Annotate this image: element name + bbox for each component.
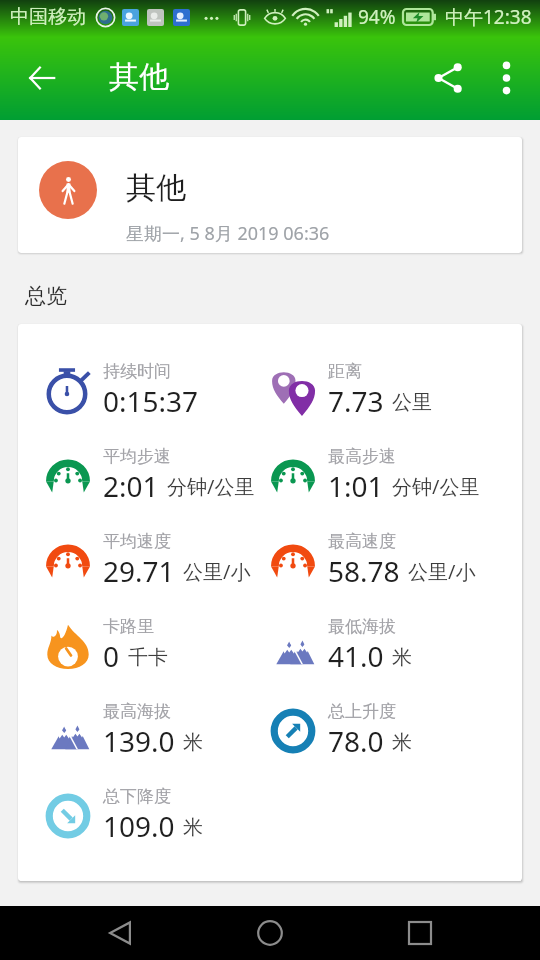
- button[interactable]: Back: [18, 54, 66, 102]
- button[interactable]: 最低海拔: [244, 603, 522, 688]
- staticText: 分钟/公里: [167, 473, 255, 500]
- staticText: 0: [103, 637, 120, 675]
- button[interactable]: Share: [425, 54, 473, 102]
- button[interactable]: 平均速度: [18, 518, 244, 603]
- button[interactable]: 距离: [244, 348, 522, 433]
- button[interactable]: 平均步速: [18, 433, 244, 518]
- staticText: 卡路里: [103, 616, 154, 637]
- button[interactable]: Home: [240, 906, 300, 960]
- staticText: 0:15:37: [103, 382, 199, 420]
- button[interactable]: 持续时间: [18, 348, 244, 433]
- staticText: 平均步速: [103, 446, 171, 467]
- button[interactable]: 其他: [18, 137, 522, 253]
- staticText: 中午12:38: [445, 4, 532, 30]
- staticText: 公里/小: [408, 558, 476, 585]
- staticText: 中国移动: [10, 5, 86, 29]
- staticText: 总下降度: [103, 786, 171, 807]
- staticText: 7.73: [328, 382, 384, 420]
- staticText: 距离: [328, 361, 362, 382]
- staticText: 2:01: [103, 467, 159, 505]
- staticText: 58.78: [328, 552, 400, 590]
- staticText: 其他: [109, 58, 169, 96]
- staticText: 星期一, 5 8月 2019 06:36: [126, 221, 330, 246]
- staticText: 最高海拔: [103, 701, 171, 722]
- staticText: 94%: [358, 4, 396, 30]
- button[interactable]: 卡路里: [18, 603, 244, 688]
- staticText: 分钟/公里: [392, 473, 480, 500]
- button[interactable]: Back: [90, 906, 150, 960]
- staticText: 41.0: [328, 637, 384, 675]
- staticText: 总上升度: [328, 701, 396, 722]
- staticText: 平均速度: [103, 531, 171, 552]
- staticText: 最高速度: [328, 531, 396, 552]
- staticText: 总览: [25, 283, 67, 309]
- button[interactable]: 总上升度: [244, 688, 522, 773]
- staticText: 1:01: [328, 467, 384, 505]
- staticText: 米: [183, 815, 203, 840]
- staticText: 米: [392, 730, 412, 755]
- button[interactable]: More options: [482, 54, 530, 102]
- staticText: 139.0: [103, 722, 175, 760]
- staticText: 最高步速: [328, 446, 396, 467]
- button[interactable]: 总下降度: [18, 773, 244, 858]
- staticText: 千卡: [128, 645, 168, 670]
- button[interactable]: 最高海拔: [18, 688, 244, 773]
- staticText: 米: [392, 645, 412, 670]
- staticText: 最低海拔: [328, 616, 396, 637]
- staticText: 公里/小: [183, 558, 251, 585]
- staticText: 29.71: [103, 552, 175, 590]
- staticText: 持续时间: [103, 361, 171, 382]
- button[interactable]: Recents: [390, 906, 450, 960]
- staticText: 米: [183, 730, 203, 755]
- staticText: 109.0: [103, 807, 175, 845]
- button[interactable]: 最高速度: [244, 518, 522, 603]
- staticText: 其他: [126, 169, 186, 207]
- button[interactable]: 最高步速: [244, 433, 522, 518]
- staticText: 公里: [392, 390, 432, 415]
- staticText: 78.0: [328, 722, 384, 760]
